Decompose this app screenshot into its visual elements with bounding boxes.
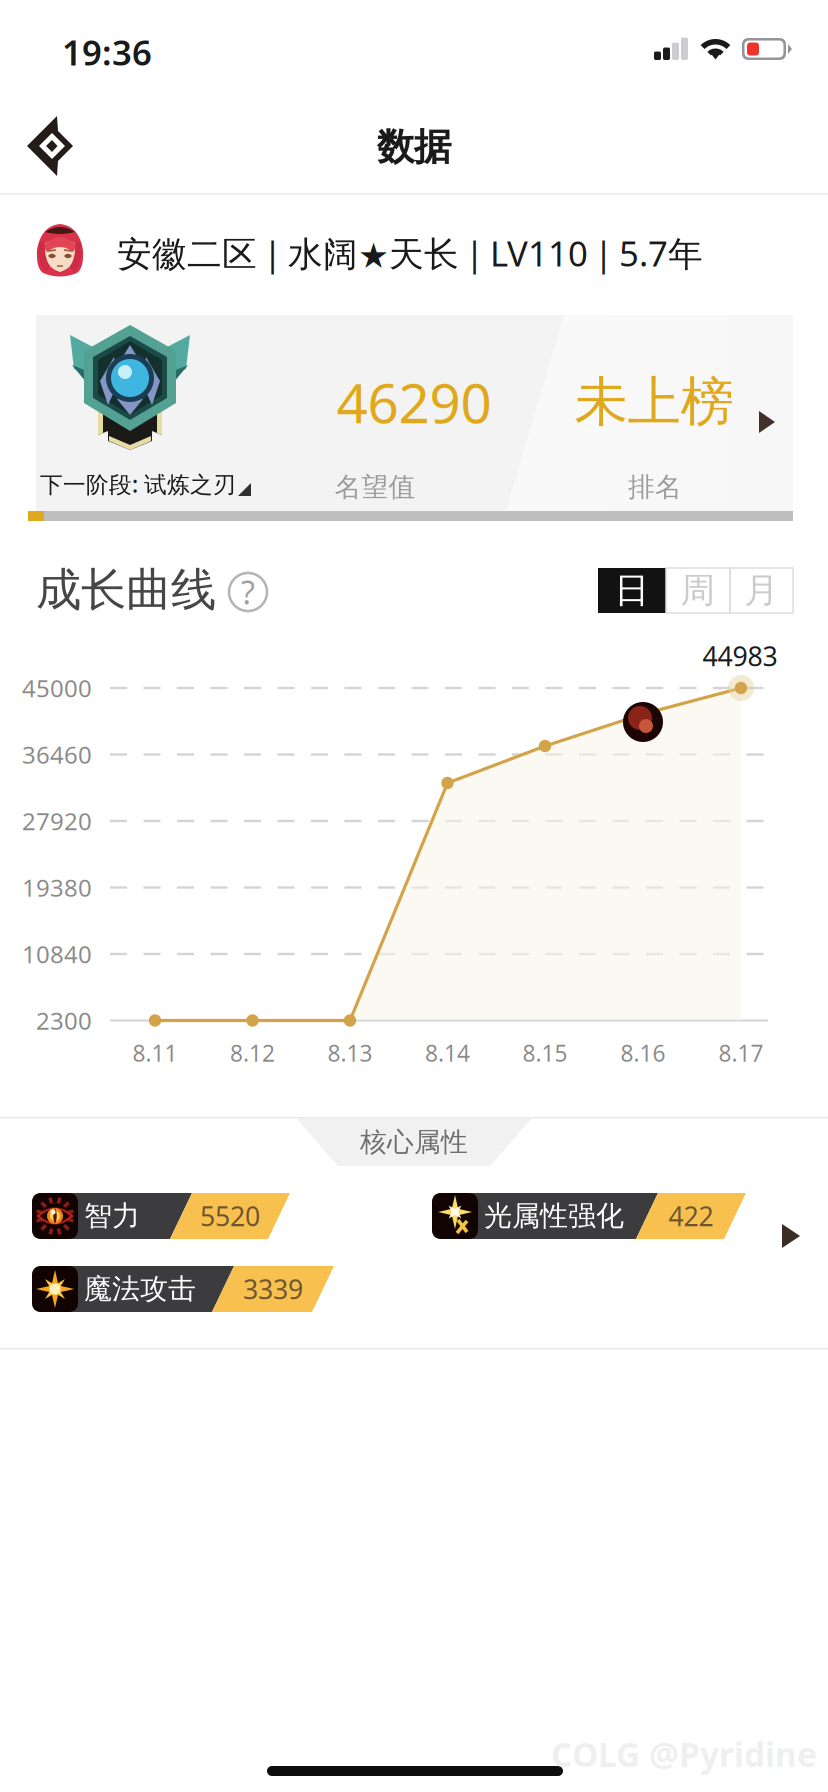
staticText: COLG @Pyridine <box>551 1732 817 1776</box>
button[interactable]: 智力 <box>32 1193 290 1239</box>
staticText: 5520 <box>200 1198 260 1234</box>
staticText: 3339 <box>243 1271 303 1307</box>
button[interactable]: 日 <box>598 568 666 613</box>
staticText: 27920 <box>22 805 92 837</box>
staticText: 422 <box>668 1198 713 1234</box>
staticText: 日 <box>614 569 649 612</box>
staticText: 8.13 <box>327 1038 372 1068</box>
staticText: 成长曲线 <box>36 562 216 618</box>
button[interactable]: Help <box>226 570 270 614</box>
staticText: 44983 <box>702 638 777 674</box>
staticText: 8.16 <box>620 1038 665 1068</box>
staticText: 8.11 <box>132 1038 177 1068</box>
staticText: 光属性强化 <box>484 1199 624 1233</box>
staticText: 36460 <box>22 739 92 770</box>
staticText: 周 <box>680 569 715 612</box>
staticText: 2300 <box>36 1005 92 1036</box>
button[interactable]: Menu <box>20 104 96 188</box>
staticText: 8.12 <box>230 1038 275 1068</box>
staticText: 8.14 <box>425 1038 470 1068</box>
staticText: 数据 <box>377 124 451 170</box>
staticText: 智力 <box>84 1199 140 1233</box>
button[interactable]: 魔法攻击 <box>32 1266 334 1312</box>
staticText: 45000 <box>22 672 92 704</box>
button[interactable]: 下一阶段: 试炼之刃 <box>36 315 793 511</box>
staticText: 19380 <box>22 872 92 903</box>
button[interactable]: 安徽二区 | 水阔★天长 | LV110 | 5.7年 <box>0 196 828 314</box>
staticText: 8.15 <box>522 1038 567 1068</box>
staticText: 8.17 <box>718 1038 763 1068</box>
staticText: 10840 <box>22 938 92 970</box>
staticText: 46290 <box>336 366 491 438</box>
staticText: 下一阶段: 试炼之刃 <box>40 469 236 499</box>
staticText: 名望值 <box>334 471 415 503</box>
staticText: 月 <box>744 569 779 612</box>
button[interactable]: 光属性强化 <box>432 1193 746 1239</box>
staticText: 排名 <box>628 471 682 503</box>
staticText: 安徽二区 | 水阔★天长 | LV110 | 5.7年 <box>117 230 703 276</box>
button[interactable]: 周 <box>666 568 730 613</box>
button[interactable]: 月 <box>730 568 793 613</box>
button[interactable]: More attributes <box>768 1214 812 1258</box>
staticText: ? <box>241 571 255 613</box>
staticText: 未上榜 <box>574 369 733 435</box>
staticText: 核心属性 <box>360 1126 468 1158</box>
staticText: 魔法攻击 <box>84 1272 196 1306</box>
staticText: 19:36 <box>62 29 152 75</box>
